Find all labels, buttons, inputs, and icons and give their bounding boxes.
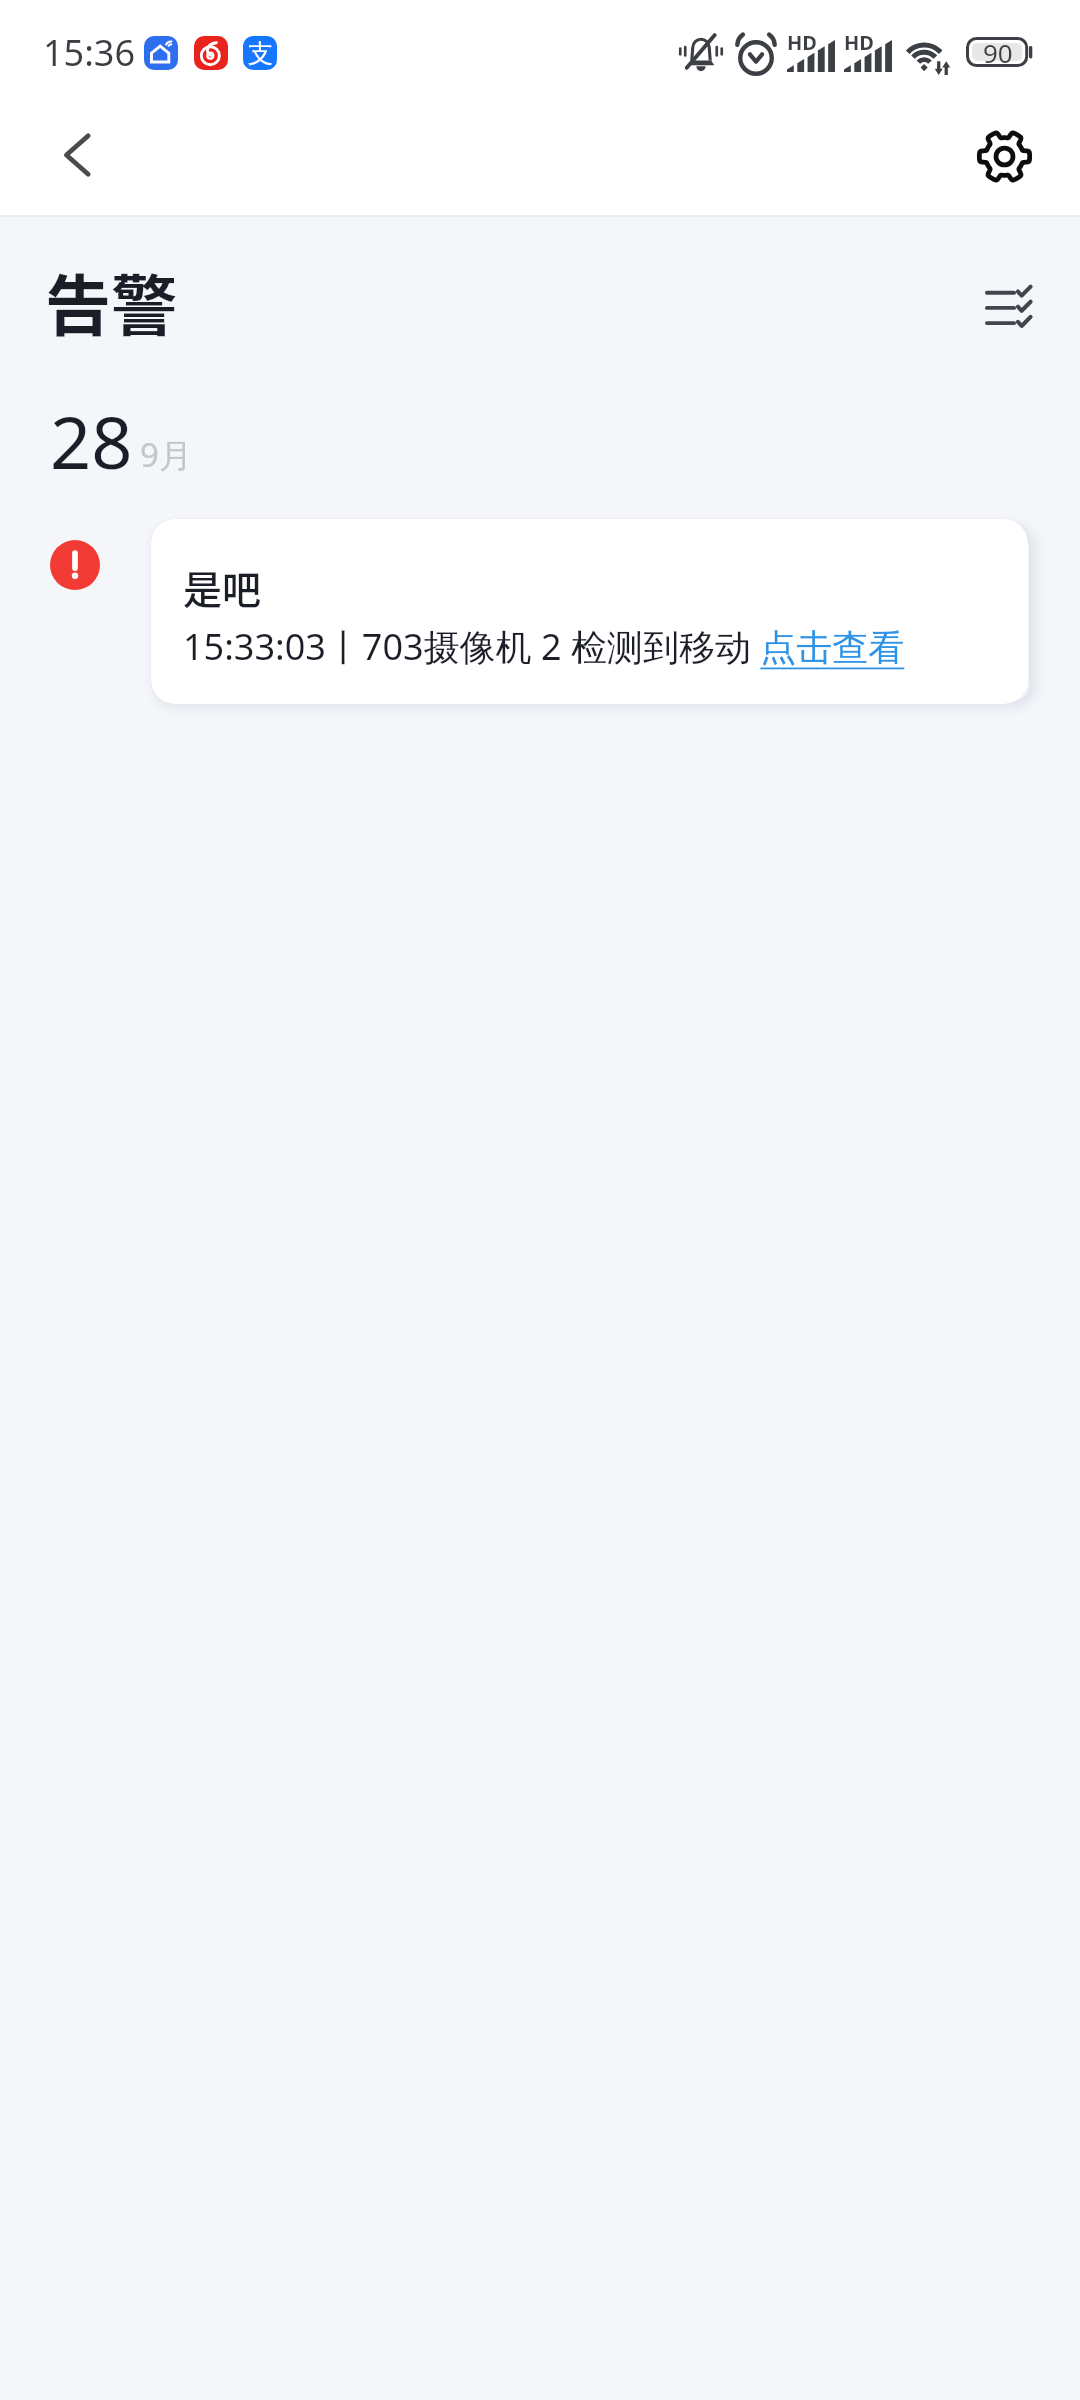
staticText: 15:33:03丨703摄像机 2 检测到移动 点击查看	[183, 622, 905, 671]
staticText: 告警	[45, 253, 177, 349]
button[interactable]: 是吧	[151, 519, 1028, 704]
button[interactable]: Back	[41, 119, 113, 191]
staticText: 支	[248, 38, 273, 69]
staticText: 9月	[140, 432, 192, 477]
staticText: HD	[787, 29, 817, 56]
staticText: 15:36	[43, 28, 136, 77]
button[interactable]: Filter list	[972, 271, 1044, 343]
button[interactable]: Settings	[970, 122, 1038, 190]
staticText: HD	[844, 29, 874, 56]
staticText: 是吧	[183, 559, 262, 615]
staticText: 28	[50, 392, 133, 490]
staticText: 90	[983, 35, 1013, 70]
